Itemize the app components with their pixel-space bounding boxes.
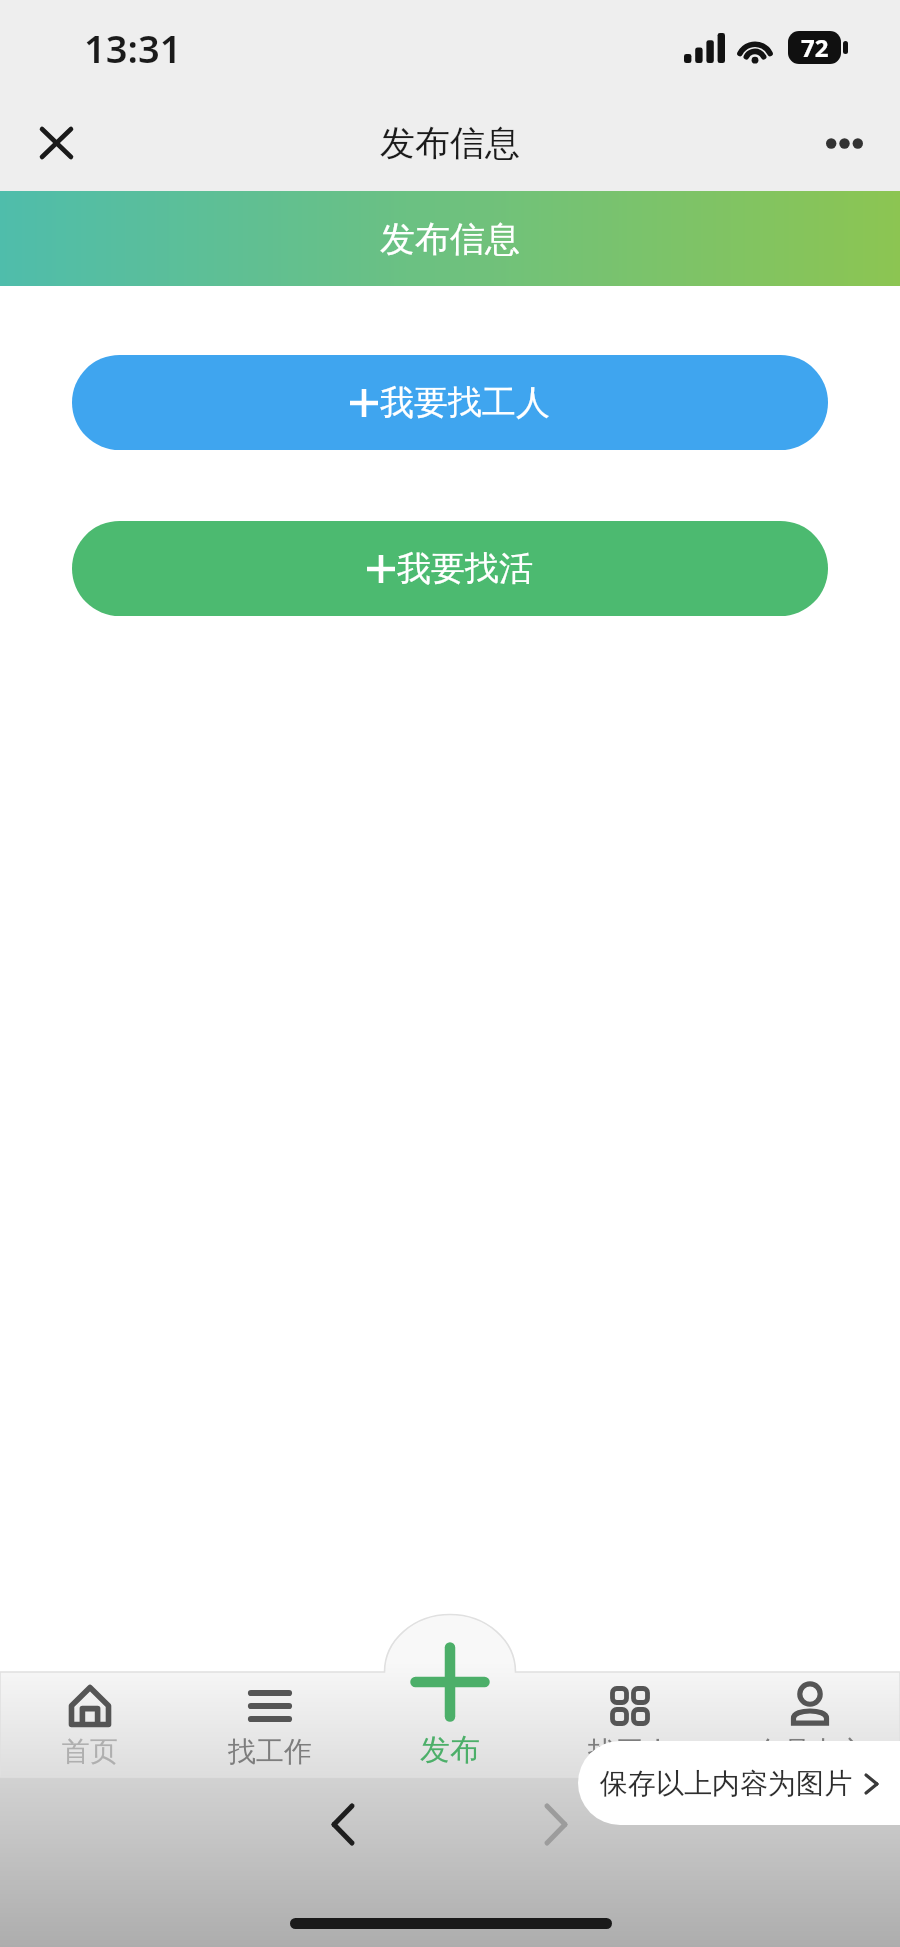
staticText: 找工人 — [588, 1734, 672, 1769]
button[interactable]: Back — [306, 1787, 380, 1861]
staticText: 发布信息 — [380, 217, 520, 261]
staticText: 我要找工人 — [380, 381, 550, 424]
staticText: 会员中心 — [754, 1734, 866, 1769]
button[interactable]: 首页 — [0, 1672, 180, 1777]
button[interactable]: 我要找工人 — [72, 355, 828, 450]
button[interactable]: 我要找活 — [72, 521, 828, 616]
staticText: 保存以上内容为图片 — [600, 1766, 852, 1801]
staticText: 72 — [801, 31, 829, 64]
staticText: 首页 — [62, 1734, 118, 1769]
button[interactable]: 找工作 — [180, 1672, 360, 1777]
button[interactable]: 会员中心 — [720, 1672, 900, 1777]
button[interactable]: 保存以上内容为图片 — [578, 1741, 900, 1825]
button[interactable]: More options — [814, 113, 874, 173]
button[interactable]: Close — [26, 113, 86, 173]
staticText: 发布 — [420, 1731, 480, 1769]
button[interactable]: 找工人 — [540, 1672, 720, 1777]
staticText: 找工作 — [228, 1734, 312, 1769]
staticText: 发布信息 — [380, 121, 520, 165]
staticText: 13:31 — [84, 22, 182, 74]
button[interactable]: Forward — [519, 1787, 593, 1861]
staticText: 我要找活 — [397, 547, 533, 590]
button[interactable]: 发布 — [360, 1637, 540, 1769]
